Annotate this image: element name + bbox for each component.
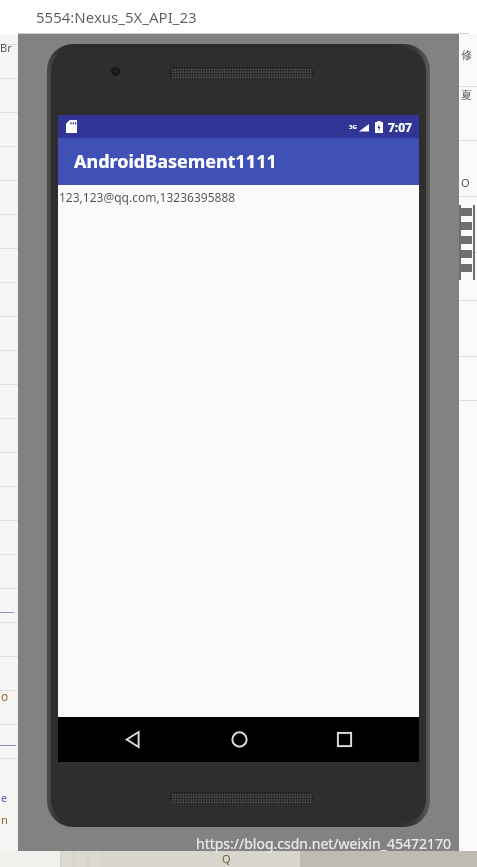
staticText: Br	[0, 40, 12, 55]
staticText: O	[461, 175, 470, 190]
button[interactable]: 123,123@qq.com,13236395888	[59, 189, 236, 205]
staticText: Q	[222, 851, 231, 866]
staticText: https://blog.csdn.net/weixin_45472170	[196, 834, 452, 853]
staticText: 5554:Nexus_5X_API_23	[36, 7, 197, 27]
button[interactable]: Home	[209, 717, 269, 762]
staticText: 修	[461, 48, 472, 62]
button[interactable]: Back	[103, 717, 163, 762]
staticText: 夏	[461, 88, 472, 102]
staticText: AndroidBasement1111	[74, 149, 277, 174]
staticText: o	[1, 688, 9, 704]
button[interactable]: AndroidBasement1111	[58, 138, 419, 185]
staticText: e	[1, 790, 8, 805]
staticText: 3G	[349, 123, 357, 131]
staticText: n	[1, 812, 8, 827]
button[interactable]: Recent apps	[314, 717, 374, 762]
staticText: 7:07	[388, 119, 412, 135]
